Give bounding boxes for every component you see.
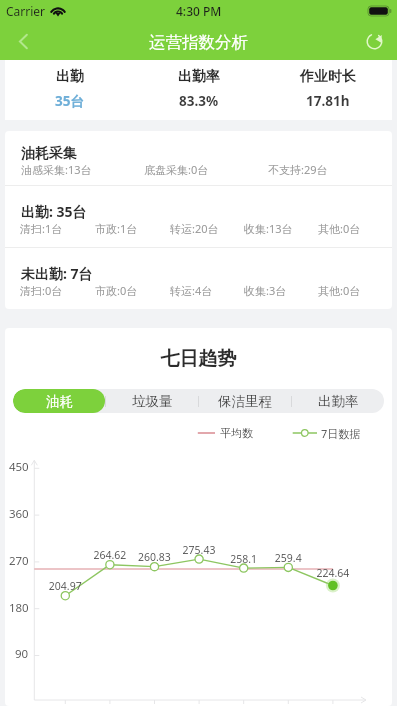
staticText: 平均数 <box>220 426 253 440</box>
staticText: 未出勤: 7台 <box>21 264 93 283</box>
staticText: 底盘采集:0台 <box>144 162 268 177</box>
button[interactable]: Refresh <box>357 24 391 58</box>
staticText: 出勤率 <box>318 393 359 410</box>
staticText: 收集:13台 <box>244 221 318 236</box>
staticText: 清扫:1台 <box>20 221 95 236</box>
staticText: 油耗采集 <box>21 145 77 163</box>
staticText: 7日数据 <box>321 426 361 441</box>
staticText: 其他:0台 <box>318 221 392 236</box>
button[interactable]: 保洁里程 <box>199 389 291 413</box>
button[interactable]: Back <box>6 24 40 58</box>
staticText: 清扫:0台 <box>20 283 95 298</box>
staticText: Carrier <box>6 3 46 19</box>
button[interactable]: 垃圾量 <box>106 389 198 413</box>
staticText: 油耗 <box>46 393 73 410</box>
staticText: 不支持:29台 <box>268 162 392 177</box>
staticText: 17.81h <box>306 92 350 110</box>
staticText: 其他:0台 <box>318 283 392 298</box>
staticText: 油感采集:13台 <box>21 162 144 177</box>
staticText: 转运:20台 <box>170 221 244 236</box>
staticText: 作业时长 <box>300 68 356 86</box>
staticText: 35台 <box>55 92 84 110</box>
staticText: 出勤 <box>56 68 84 86</box>
staticText: 七日趋势 <box>5 347 392 371</box>
staticText: 运营指数分析 <box>149 32 248 53</box>
button[interactable]: 油耗 <box>13 389 105 413</box>
staticText: 4:30 PM <box>176 3 222 19</box>
staticText: 市政:1台 <box>95 221 170 236</box>
staticText: 收集:3台 <box>244 283 318 298</box>
staticText: 垃圾量 <box>132 393 173 410</box>
staticText: 转运:4台 <box>170 283 244 298</box>
button[interactable]: 出勤率 <box>292 389 384 413</box>
staticText: 市政:0台 <box>95 283 170 298</box>
staticText: 保洁里程 <box>218 393 272 410</box>
staticText: 83.3% <box>179 92 219 110</box>
staticText: 出勤率 <box>178 68 220 86</box>
staticText: 出勤: 35台 <box>21 202 87 221</box>
